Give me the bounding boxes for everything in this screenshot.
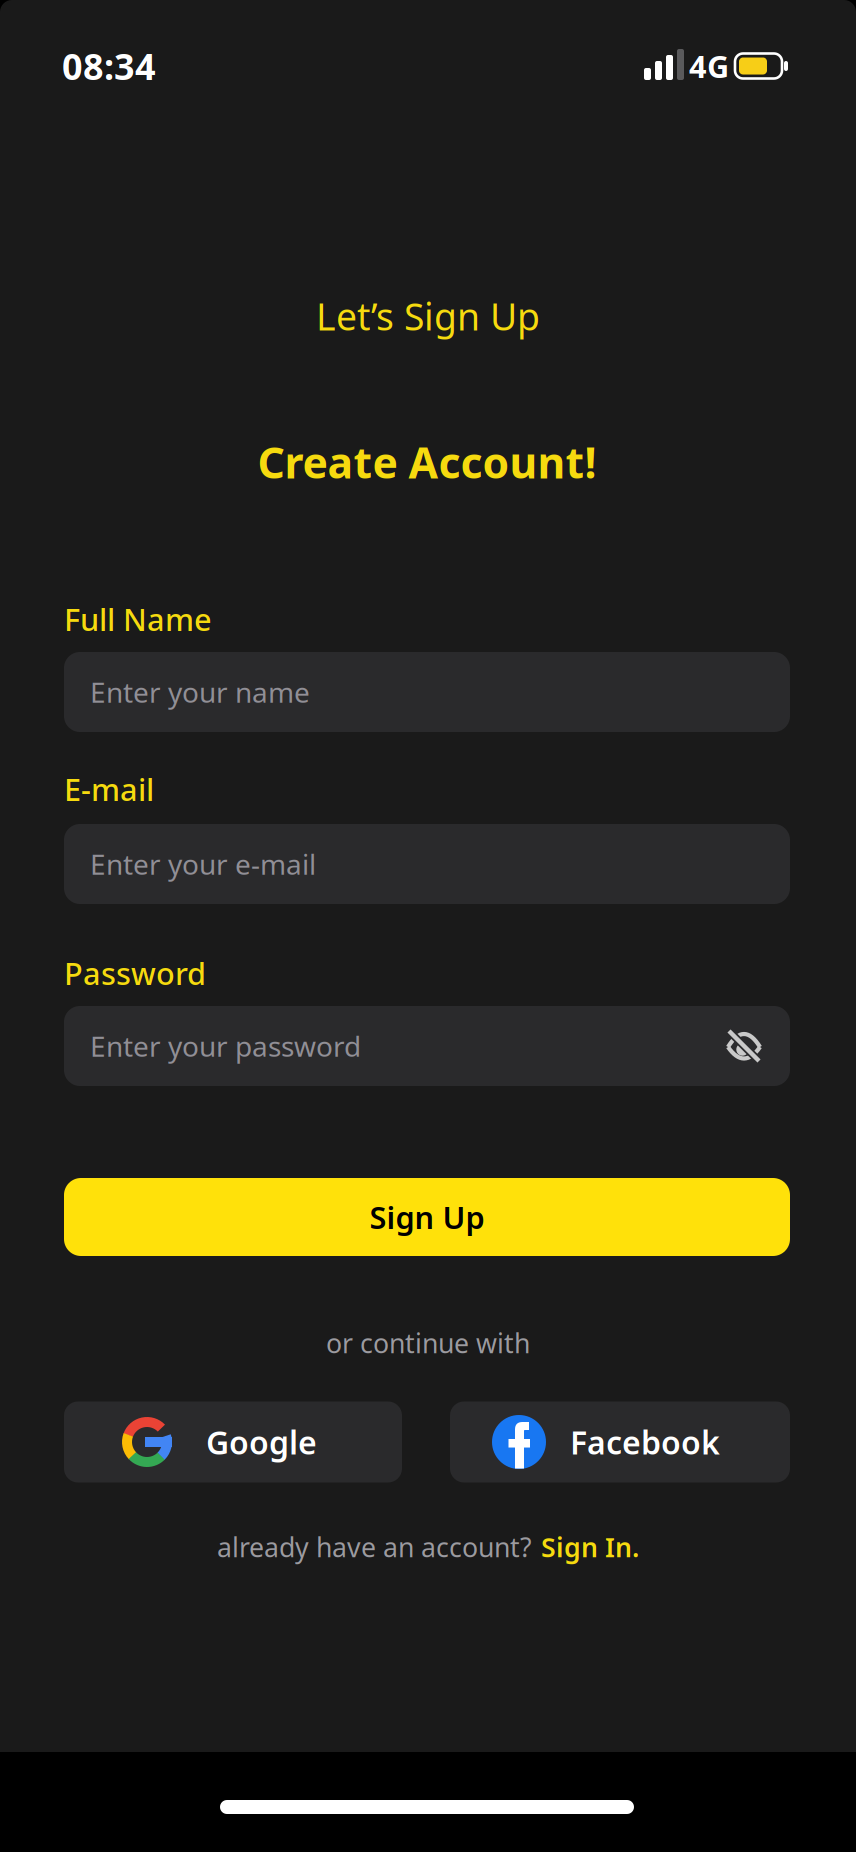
staticText: Create Account! <box>257 434 596 490</box>
button[interactable]: Enter your password <box>64 1006 790 1086</box>
button[interactable]: Facebook <box>450 1401 790 1482</box>
staticText: Sign In. <box>541 1529 639 1565</box>
staticText: Google <box>206 1421 317 1463</box>
button[interactable]: Google <box>64 1401 402 1482</box>
staticText: 08:34 <box>62 42 156 90</box>
button[interactable]: Enter your name <box>64 652 790 732</box>
staticText: Let’s Sign Up <box>316 291 540 341</box>
staticText: E-mail <box>64 769 154 809</box>
staticText: Enter your e-mail <box>90 845 316 883</box>
staticText: already have an account? <box>217 1529 532 1565</box>
staticText: Enter your password <box>90 1027 361 1065</box>
button[interactable]: Sign In. <box>541 1529 639 1565</box>
button[interactable]: Sign Up <box>64 1178 790 1256</box>
staticText: or continue with <box>326 1325 530 1361</box>
staticText: 4G <box>689 46 729 86</box>
staticText: Password <box>64 953 206 993</box>
staticText: Full Name <box>64 599 212 639</box>
button[interactable]: Enter your e-mail <box>64 824 790 904</box>
button[interactable] <box>726 1028 762 1064</box>
staticText: Facebook <box>570 1421 720 1463</box>
staticText: Sign Up <box>369 1197 484 1237</box>
staticText: Enter your name <box>90 673 310 711</box>
